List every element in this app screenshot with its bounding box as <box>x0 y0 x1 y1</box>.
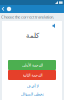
staticText: تخطي السؤال <box>20 92 43 96</box>
button[interactable]: Profile <box>6 5 12 13</box>
button[interactable]: الترجمة الأولى <box>8 60 56 70</box>
staticText: الترجمة الثانية <box>22 73 42 77</box>
button[interactable]: Play audio <box>51 21 58 28</box>
button[interactable]: الترجمة الثانية <box>8 70 56 80</box>
button[interactable]: Back <box>0 5 6 13</box>
button[interactable]: لا أعرف <box>26 84 38 88</box>
staticText: لا أعرف <box>26 84 38 88</box>
staticText: Choose the correct translation. <box>1 14 54 20</box>
button[interactable]: تخطي السؤال <box>20 92 43 96</box>
staticText: الترجمة الأولى <box>21 63 42 67</box>
staticText: كلمة <box>25 32 38 39</box>
